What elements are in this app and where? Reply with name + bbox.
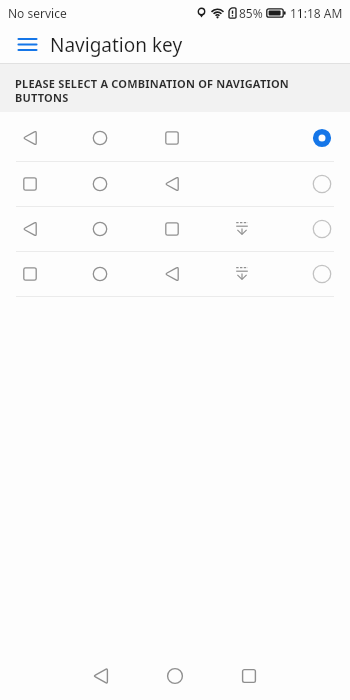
button[interactable]	[153, 654, 197, 698]
staticText: Navigation key	[50, 32, 183, 58]
staticText: 11:18 AM	[290, 5, 343, 21]
button[interactable]	[81, 654, 125, 698]
button[interactable]	[227, 654, 271, 698]
staticText: No service	[8, 5, 67, 21]
button[interactable]	[0, 115, 350, 161]
staticText: PLEASE SELECT A COMBINATION OF NAVIGATIO…	[15, 76, 289, 106]
button[interactable]	[0, 162, 350, 206]
button[interactable]	[7, 26, 47, 63]
button[interactable]	[0, 252, 350, 296]
staticText: 85%	[239, 5, 263, 21]
button[interactable]	[0, 207, 350, 251]
